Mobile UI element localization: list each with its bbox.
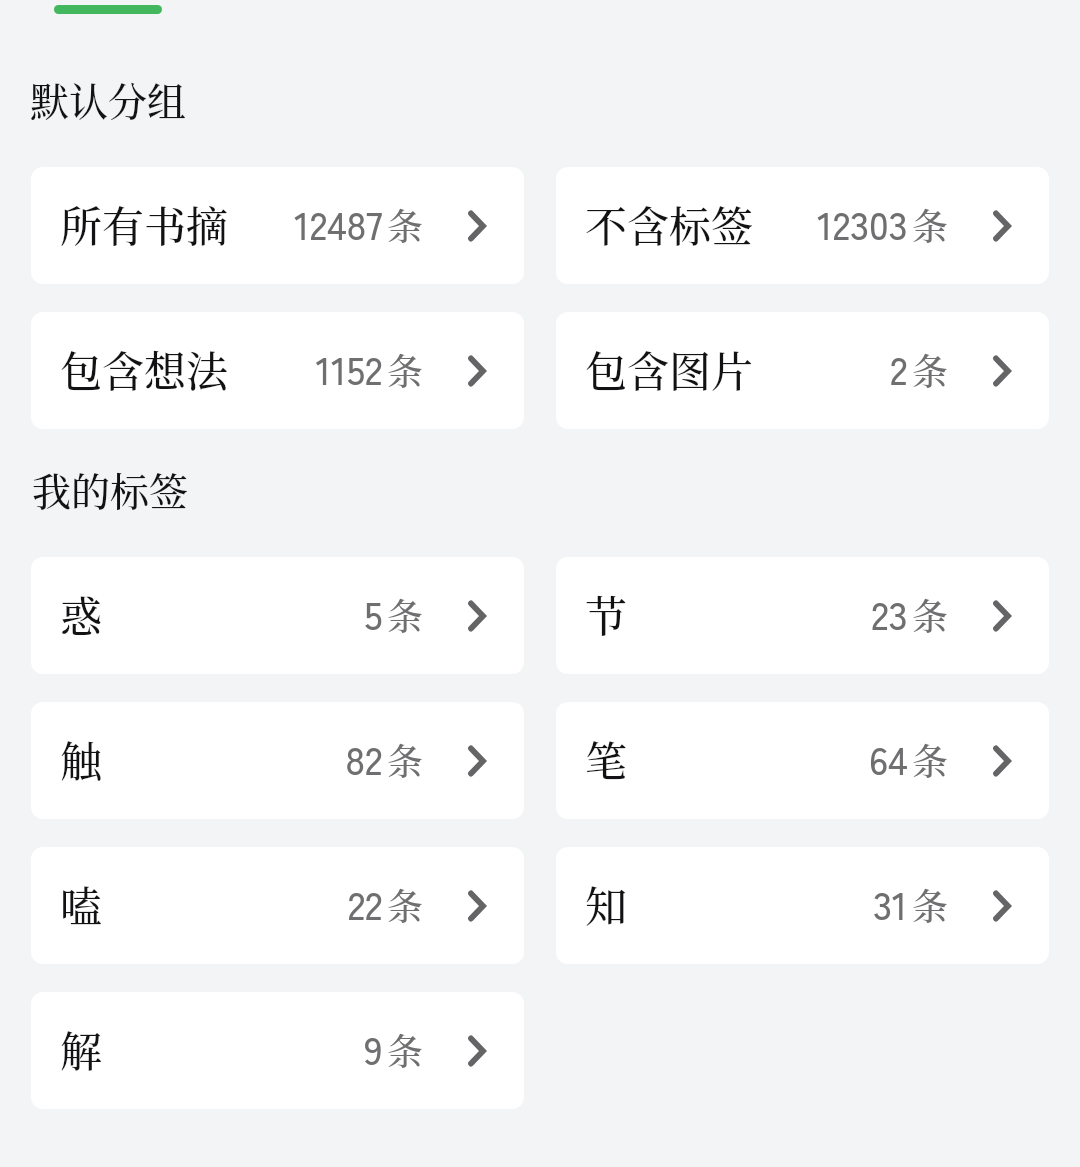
staticText: 惑	[60, 584, 103, 644]
button[interactable]: 不含标签	[556, 167, 1049, 284]
staticText: 9 条	[363, 1020, 423, 1076]
staticText: 我的标签	[32, 461, 189, 517]
other: Open	[463, 596, 491, 636]
staticText: 82 条	[345, 730, 423, 786]
button[interactable]: 笔	[556, 702, 1049, 819]
button[interactable]: 触	[31, 702, 524, 819]
staticText: 2 条	[890, 340, 948, 396]
button[interactable]: 所有书摘	[31, 167, 524, 284]
button[interactable]: 解	[31, 992, 524, 1109]
other: Open	[988, 351, 1016, 391]
staticText: 5 条	[364, 585, 423, 641]
staticText: 1152 条	[315, 340, 423, 396]
staticText: 12487 条	[294, 195, 423, 251]
staticText: 包含想法	[60, 339, 229, 399]
other: Open	[988, 596, 1016, 636]
staticText: 所有书摘	[60, 194, 229, 254]
button[interactable]: 知	[556, 847, 1049, 964]
other: Open	[463, 206, 491, 246]
button[interactable]: 惑	[31, 557, 524, 674]
other: Open	[463, 886, 491, 926]
staticText: 默认分组	[30, 71, 187, 127]
other: Open	[988, 741, 1016, 781]
other: Open	[988, 886, 1016, 926]
other: Selected tab indicator	[54, 5, 162, 14]
button[interactable]: 包含图片	[556, 312, 1049, 429]
button[interactable]: 嗑	[31, 847, 524, 964]
staticText: 节	[585, 584, 628, 644]
staticText: 23 条	[871, 585, 948, 641]
other: Open	[463, 351, 491, 391]
staticText: 64 条	[868, 730, 948, 786]
staticText: 笔	[585, 729, 628, 789]
other: Open	[463, 1031, 491, 1071]
staticText: 解	[60, 1019, 103, 1079]
button[interactable]: 包含想法	[31, 312, 524, 429]
other: Open	[463, 741, 491, 781]
staticText: 嗑	[60, 874, 103, 934]
staticText: 触	[60, 729, 103, 789]
staticText: 31 条	[873, 875, 948, 931]
button[interactable]: 节	[556, 557, 1049, 674]
staticText: 不含标签	[585, 194, 754, 254]
staticText: 22 条	[347, 875, 423, 931]
staticText: 知	[585, 874, 628, 934]
staticText: 包含图片	[585, 339, 754, 399]
staticText: 12303 条	[817, 195, 948, 251]
other: Open	[988, 206, 1016, 246]
